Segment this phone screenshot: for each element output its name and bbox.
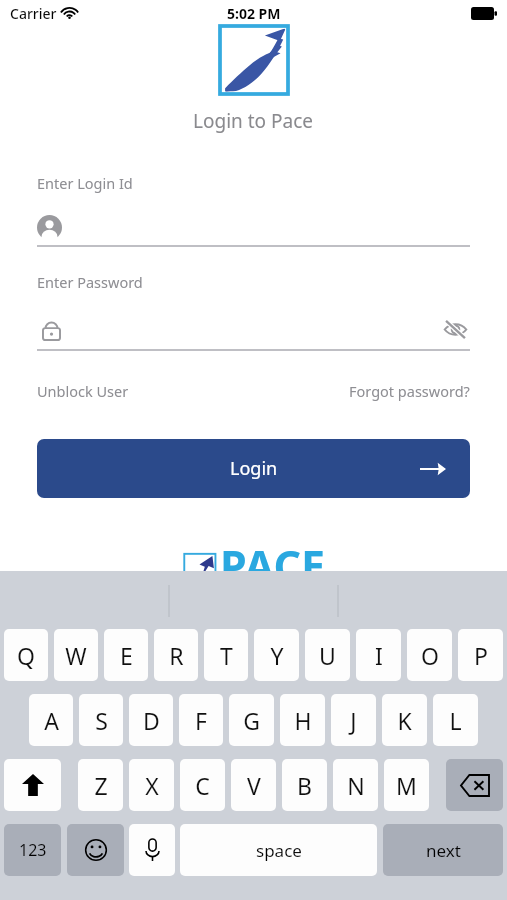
- button[interactable]: J: [331, 694, 376, 746]
- staticText: Enter Login Id: [37, 173, 133, 193]
- staticText: space: [256, 839, 302, 862]
- staticText: W: [65, 640, 87, 671]
- staticText: Login: [230, 456, 278, 481]
- staticText: C: [195, 770, 210, 801]
- button[interactable]: next: [383, 824, 503, 876]
- button[interactable]: N: [333, 759, 378, 811]
- staticText: Carrier: [10, 4, 57, 23]
- staticText: H: [294, 705, 312, 736]
- button[interactable]: Y: [254, 629, 299, 681]
- staticText: N: [347, 770, 365, 801]
- staticText: I: [375, 640, 383, 671]
- button[interactable]: K: [382, 694, 427, 746]
- button[interactable]: C: [180, 759, 225, 811]
- button[interactable]: O: [407, 629, 452, 681]
- button[interactable]: B: [282, 759, 327, 811]
- staticText: V: [247, 770, 261, 801]
- button[interactable]: Forgot password?: [349, 381, 470, 401]
- staticText: A: [44, 705, 59, 736]
- staticText: Q: [17, 640, 35, 671]
- staticText: 5:02 PM: [227, 4, 281, 23]
- staticText: O: [421, 640, 439, 671]
- button[interactable]: U: [305, 629, 350, 681]
- staticText: P: [474, 640, 488, 671]
- button[interactable]: M: [384, 759, 429, 811]
- button[interactable]: Login: [37, 439, 470, 498]
- button[interactable]: D: [129, 694, 173, 746]
- button[interactable]: R: [154, 629, 198, 681]
- button[interactable]: W: [54, 629, 98, 681]
- staticText: PACE: [220, 536, 326, 595]
- button[interactable]: P: [458, 629, 503, 681]
- button[interactable]: space: [180, 824, 377, 876]
- staticText: M: [396, 770, 417, 801]
- button[interactable]: S: [79, 694, 123, 746]
- staticText: U: [319, 640, 336, 671]
- button[interactable]: V: [231, 759, 276, 811]
- staticText: F: [195, 705, 207, 736]
- staticText: Y: [270, 640, 284, 671]
- staticText: D: [143, 705, 160, 736]
- staticText: Enter Password: [37, 272, 143, 292]
- button[interactable]: X: [129, 759, 174, 811]
- staticText: Z: [94, 770, 108, 801]
- button[interactable]: H: [280, 694, 325, 746]
- staticText: Unblock User: [37, 381, 129, 401]
- staticText: E: [120, 640, 133, 671]
- staticText: L: [449, 705, 462, 736]
- staticText: G: [243, 705, 260, 736]
- button[interactable]: A: [29, 694, 73, 746]
- staticText: J: [350, 705, 357, 736]
- staticText: X: [145, 770, 159, 801]
- button[interactable]: Unblock User: [37, 381, 129, 401]
- staticText: Forgot password?: [349, 381, 470, 401]
- button[interactable]: L: [433, 694, 478, 746]
- staticText: S: [95, 705, 108, 736]
- staticText: Login to Pace: [193, 108, 314, 134]
- button[interactable]: Emoji: [67, 824, 124, 876]
- staticText: B: [297, 770, 312, 801]
- button[interactable]: Q: [4, 629, 48, 681]
- button[interactable]: 123: [4, 824, 61, 876]
- staticText: T: [220, 640, 233, 671]
- button[interactable]: G: [229, 694, 274, 746]
- staticText: next: [426, 839, 461, 862]
- button[interactable]: T: [204, 629, 248, 681]
- button[interactable]: I: [356, 629, 401, 681]
- button[interactable]: Shift: [4, 759, 61, 811]
- staticText: R: [169, 640, 184, 671]
- button[interactable]: Backspace: [446, 759, 503, 811]
- button[interactable]: Dictation: [129, 824, 175, 876]
- button[interactable]: Z: [78, 759, 123, 811]
- staticText: 123: [19, 839, 47, 861]
- button[interactable]: Show password: [440, 314, 470, 344]
- button[interactable]: F: [179, 694, 223, 746]
- button[interactable]: E: [104, 629, 148, 681]
- staticText: K: [397, 705, 412, 736]
